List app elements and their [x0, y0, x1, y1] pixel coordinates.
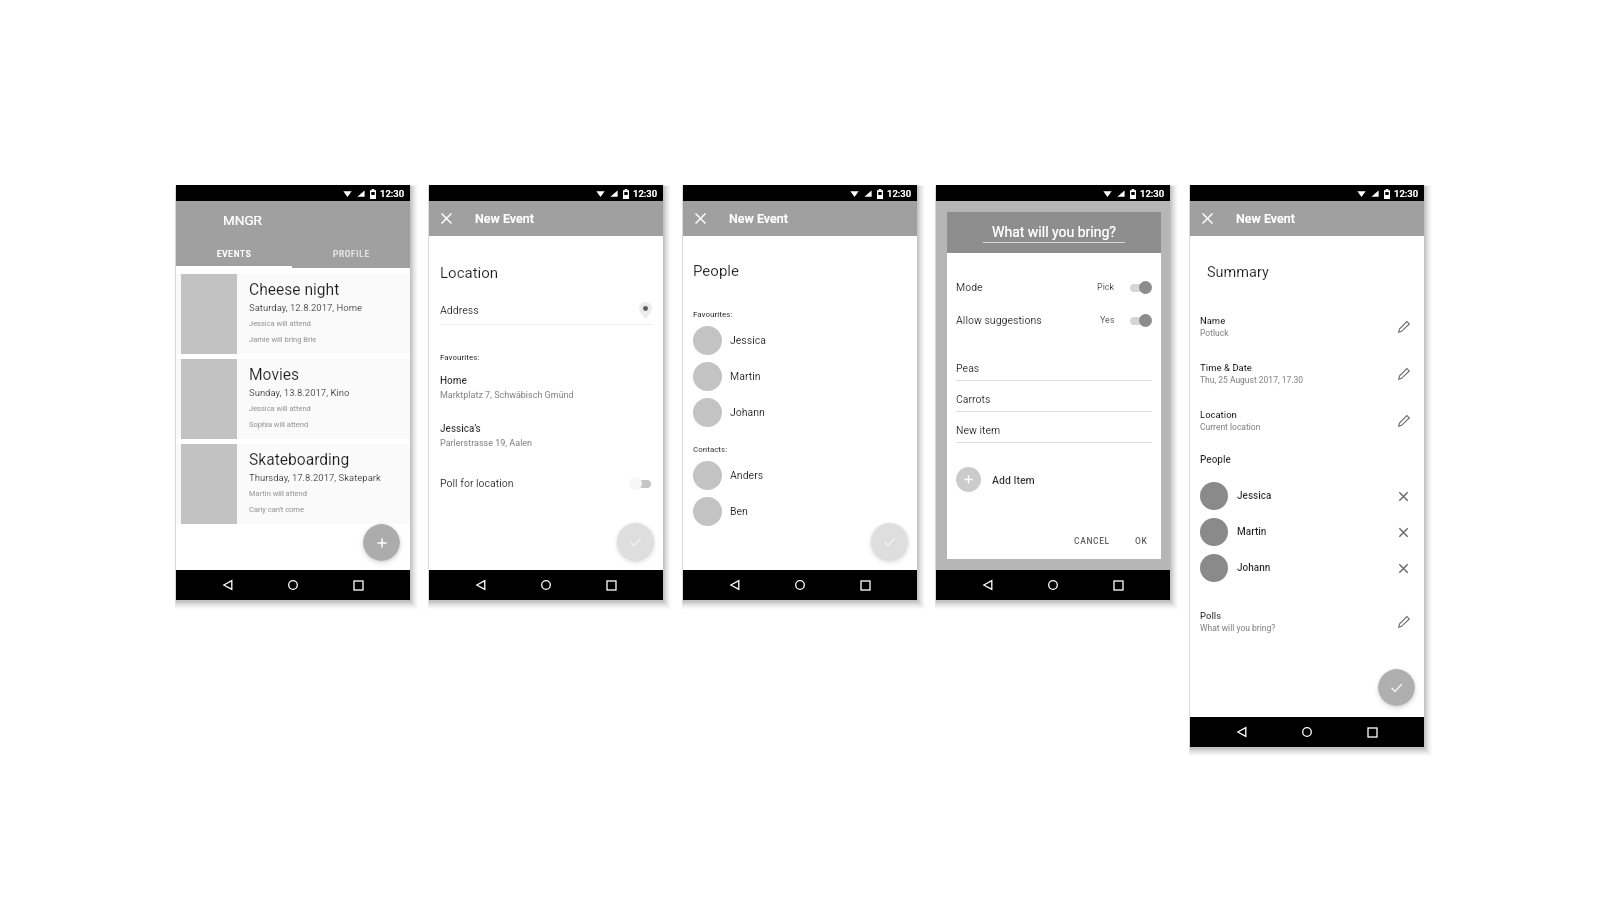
- button[interactable]: Close: [1198, 209, 1217, 228]
- staticText: Jessica will attend: [249, 319, 311, 328]
- button[interactable]: Add Item: [956, 467, 1035, 492]
- button[interactable]: Edit Polls: [1395, 613, 1412, 630]
- button[interactable]: CANCEL: [1070, 533, 1114, 549]
- button[interactable]: Martin: [1200, 514, 1414, 550]
- staticText: CANCEL: [1074, 536, 1110, 546]
- button[interactable]: Back: [721, 571, 749, 599]
- button[interactable]: Edit Location: [1395, 412, 1412, 429]
- button[interactable]: Movies: [176, 359, 410, 439]
- staticText: Polls: [1200, 610, 1222, 621]
- button[interactable]: Home: [279, 571, 307, 599]
- button[interactable]: Confirm: [1378, 669, 1415, 706]
- staticText: Johann: [1237, 562, 1397, 574]
- button[interactable]: New item: [956, 424, 1152, 455]
- staticText: New item: [956, 424, 1001, 436]
- staticText: Saturday, 12.8.2017, Home: [249, 302, 363, 313]
- staticText: Jessica: [1237, 490, 1397, 502]
- staticText: Carly can't come: [249, 505, 304, 514]
- staticText: Mode: [956, 281, 1097, 293]
- button[interactable]: Time & Date: [1200, 362, 1414, 385]
- staticText: PROFILE: [333, 249, 370, 259]
- button[interactable]: Anders: [693, 457, 907, 493]
- button[interactable]: Toggle: [1129, 281, 1152, 294]
- staticText: Cheese night: [249, 281, 340, 299]
- staticText: Marktplatz 7, Schwäbisch Gmünd: [440, 390, 574, 401]
- button[interactable]: Back: [214, 571, 242, 599]
- staticText: Carrots: [956, 393, 991, 405]
- button[interactable]: Remove Martin: [1395, 524, 1412, 541]
- staticText: EVENTS: [217, 249, 252, 259]
- staticText: Add Item: [992, 474, 1035, 486]
- button[interactable]: PROFILE: [293, 240, 410, 268]
- button[interactable]: Johann: [693, 394, 907, 430]
- button[interactable]: Home: [1039, 571, 1067, 599]
- button[interactable]: Edit Name: [1395, 318, 1412, 335]
- button[interactable]: EVENTS: [176, 240, 293, 268]
- staticText: Peas: [956, 362, 980, 374]
- button[interactable]: Remove Johann: [1395, 560, 1412, 577]
- button[interactable]: Recents: [597, 571, 625, 599]
- button[interactable]: Jessica’s: [440, 423, 533, 449]
- button[interactable]: Back: [974, 571, 1002, 599]
- button[interactable]: Martin: [693, 358, 907, 394]
- button[interactable]: Skateboarding: [176, 444, 410, 524]
- staticText: Address: [440, 304, 639, 316]
- staticText: Current location: [1200, 422, 1261, 432]
- staticText: OK: [1135, 536, 1148, 546]
- staticText: Thu, 25 August 2017, 17.30: [1200, 375, 1304, 385]
- button[interactable]: Recents: [851, 571, 879, 599]
- button[interactable]: Home: [786, 571, 814, 599]
- button[interactable]: Recents: [1358, 718, 1386, 746]
- staticText: Martin: [1237, 526, 1397, 538]
- staticText: Contacts:: [693, 445, 728, 454]
- button[interactable]: Location: [1200, 409, 1414, 432]
- staticText: Jessica will attend: [249, 404, 311, 413]
- button[interactable]: Ben: [693, 493, 907, 529]
- staticText: Favourites:: [693, 310, 733, 319]
- button[interactable]: Confirm: [871, 523, 908, 560]
- button[interactable]: Back: [467, 571, 495, 599]
- button[interactable]: Cheese night: [176, 274, 410, 354]
- button[interactable]: Name: [1200, 315, 1414, 338]
- button[interactable]: Remove Jessica: [1395, 488, 1412, 505]
- button[interactable]: Recents: [1104, 571, 1132, 599]
- button[interactable]: Toggle: [1129, 314, 1152, 327]
- staticText: Skateboarding: [249, 451, 350, 469]
- staticText: Summary: [1207, 264, 1269, 281]
- staticText: Thursday, 17.8.2017, Skatepark: [249, 472, 381, 483]
- button[interactable]: Home: [532, 571, 560, 599]
- button[interactable]: Johann: [1200, 550, 1414, 586]
- button[interactable]: Jessica: [1200, 478, 1414, 514]
- button[interactable]: Peas: [956, 362, 1152, 393]
- staticText: Jessica: [730, 334, 766, 346]
- button[interactable]: Edit Time & Date: [1395, 365, 1412, 382]
- button[interactable]: Close: [437, 209, 456, 228]
- staticText: Martin will attend: [249, 489, 307, 498]
- staticText: Home: [440, 375, 467, 387]
- button[interactable]: Confirm: [617, 523, 654, 560]
- staticText: Martin: [730, 370, 761, 382]
- staticText: 12:30: [1394, 188, 1419, 199]
- button[interactable]: Home: [1293, 718, 1321, 746]
- button[interactable]: Back: [1228, 718, 1256, 746]
- button[interactable]: Address: [440, 301, 652, 319]
- button[interactable]: Toggle: [629, 477, 652, 490]
- button[interactable]: Recents: [344, 571, 372, 599]
- staticText: Allow suggestions: [956, 314, 1100, 326]
- staticText: 12:30: [887, 188, 912, 199]
- button[interactable]: Close: [691, 209, 710, 228]
- staticText: New Event: [475, 211, 534, 226]
- staticText: What will you bring?: [1200, 623, 1276, 633]
- staticText: Time & Date: [1200, 362, 1252, 373]
- staticText: 12:30: [1140, 188, 1165, 199]
- button[interactable]: OK: [1131, 533, 1152, 549]
- button[interactable]: Add event: [363, 524, 400, 561]
- staticText: Location: [440, 264, 499, 282]
- button[interactable]: Jessica: [693, 322, 907, 358]
- staticText: What will you bring?: [992, 224, 1116, 240]
- button[interactable]: Polls: [1200, 610, 1414, 633]
- button[interactable]: Home: [440, 375, 574, 401]
- staticText: Location: [1200, 409, 1237, 420]
- button[interactable]: Carrots: [956, 393, 1152, 424]
- staticText: Potluck: [1200, 328, 1229, 338]
